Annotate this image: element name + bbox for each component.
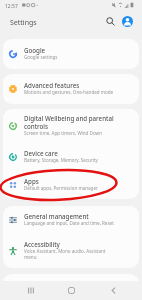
staticText: Google <box>24 46 46 54</box>
staticText: Software update <box>24 279 73 287</box>
staticText: Motions and gestures, One-handed mode <box>24 89 114 95</box>
button[interactable]: Device care <box>3 143 139 171</box>
staticText: Screen time, App timers, Wind Down <box>24 130 102 136</box>
button[interactable]: Software update <box>3 274 139 300</box>
staticText: Google settings <box>24 54 58 60</box>
staticText: Voice Assistant, Mono audio, Assistant <box>24 248 106 254</box>
button[interactable]: Google <box>3 39 139 69</box>
button[interactable]: Home <box>59 281 83 300</box>
staticText: Apps <box>24 177 39 185</box>
button[interactable]: Search <box>103 14 118 29</box>
staticText: Battery, Storage, Memory, Security <box>24 157 98 163</box>
staticText: Download and install <box>24 287 69 293</box>
button[interactable]: Accessibility <box>3 234 139 268</box>
staticText: menu <box>24 254 37 260</box>
button[interactable]: Back <box>101 281 125 300</box>
button[interactable]: General management <box>3 206 139 234</box>
staticText: Digital Wellbeing and parental <box>24 114 114 122</box>
staticText: Default apps, Permission manager <box>24 185 98 191</box>
button[interactable]: Apps <box>3 171 139 199</box>
button[interactable]: Digital Wellbeing and parental <box>3 109 139 143</box>
staticText: Advanced features <box>24 81 80 89</box>
button[interactable]: Recents <box>18 281 42 300</box>
staticText: 12:57 <box>5 3 18 10</box>
staticText: General management <box>24 212 89 220</box>
staticText: Settings <box>10 18 37 28</box>
button[interactable]: Account <box>122 16 133 27</box>
button[interactable]: Advanced features <box>3 74 139 104</box>
staticText: Device care <box>24 149 58 157</box>
staticText: controls <box>24 122 49 130</box>
staticText: Language and input, Date and time, Reset <box>24 220 114 226</box>
staticText: Accessibility <box>24 240 60 248</box>
